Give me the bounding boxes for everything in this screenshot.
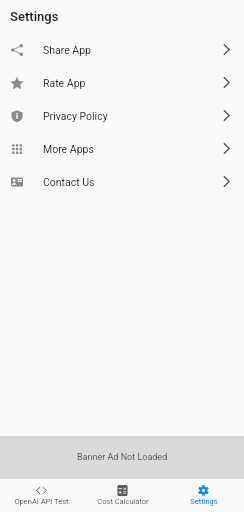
button[interactable]: More Apps [0, 132, 244, 165]
button[interactable]: Settings [163, 479, 244, 512]
staticText: Settings [190, 497, 218, 506]
button[interactable]: Contact Us [0, 165, 244, 198]
button[interactable]: Cost Calculator [82, 479, 163, 512]
staticText: Share App [43, 44, 92, 56]
staticText: Privacy Policy [43, 110, 108, 122]
button[interactable]: Privacy Policy [0, 99, 244, 132]
staticText: Banner Ad Not Loaded [77, 452, 168, 463]
staticText: Cost Calculator [97, 497, 149, 506]
staticText: Rate App [43, 77, 86, 89]
staticText: More Apps [43, 143, 94, 155]
button[interactable]: Share App [0, 33, 244, 66]
staticText: Settings [10, 9, 59, 24]
button[interactable]: OpenAI API Test [0, 479, 82, 512]
staticText: OpenAI API Test [14, 497, 69, 506]
button[interactable]: Rate App [0, 66, 244, 99]
staticText: Contact Us [43, 176, 95, 188]
